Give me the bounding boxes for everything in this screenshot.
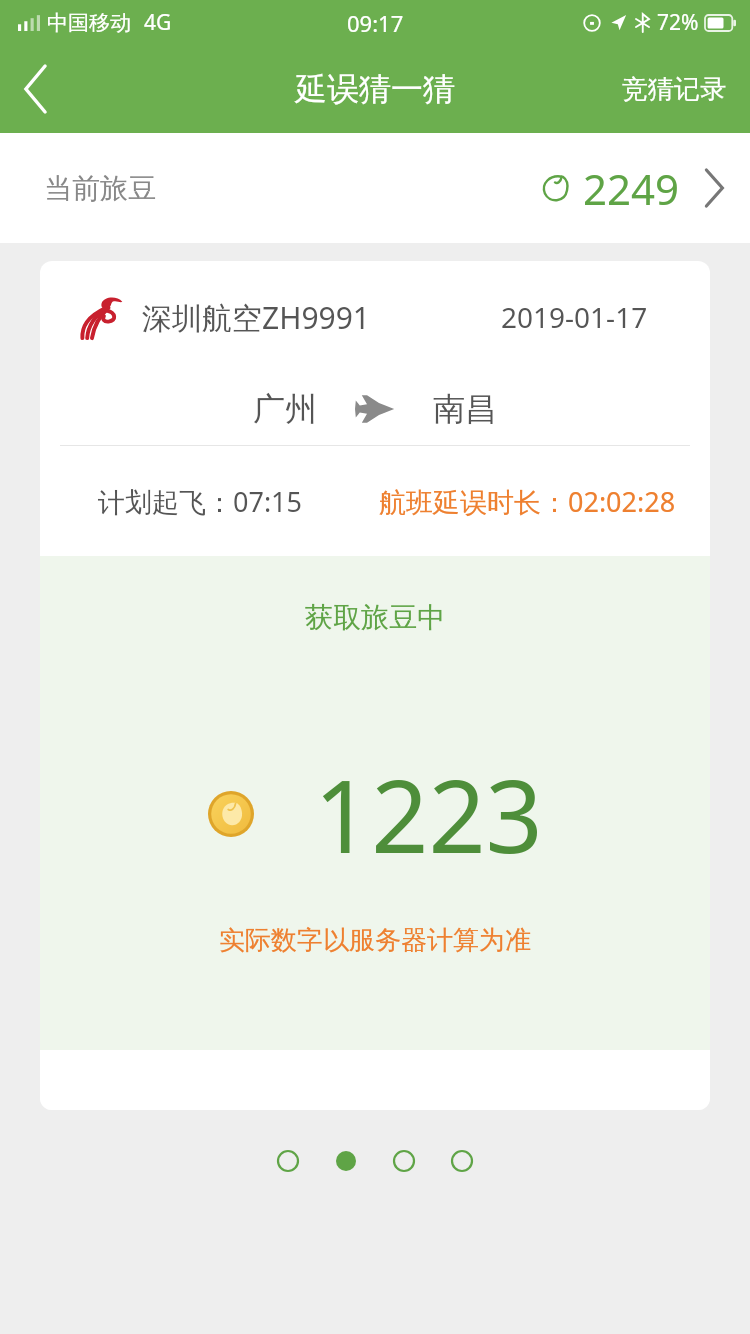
staticText: 2249: [583, 160, 680, 217]
staticText: 72%: [657, 8, 699, 37]
staticText: 获取旅豆中: [305, 600, 445, 635]
staticText: 4G: [144, 8, 172, 37]
button[interactable]: Page 4: [433, 1132, 491, 1190]
staticText: 竞猜记录: [622, 73, 726, 106]
staticText: 1223: [314, 746, 543, 882]
button[interactable]: 当前旅豆: [0, 133, 750, 243]
staticText: 延误猜一猜: [295, 69, 455, 109]
staticText: 09:17: [347, 8, 404, 38]
staticText: 中国移动: [47, 10, 131, 36]
staticText: 深圳航空ZH9991: [142, 297, 371, 338]
button[interactable]: Page 3: [375, 1132, 433, 1190]
staticText: 实际数字以服务器计算为准: [219, 924, 531, 957]
staticText: 航班延误时长：02:02:28: [379, 483, 676, 520]
staticText: 广州: [253, 389, 317, 429]
button[interactable]: Page 2: [317, 1132, 375, 1190]
staticText: 南昌: [433, 389, 497, 429]
staticText: 当前旅豆: [44, 171, 156, 206]
button[interactable]: Back: [0, 54, 70, 124]
staticText: 计划起飞：07:15: [98, 483, 303, 520]
button[interactable]: Page 1: [259, 1132, 317, 1190]
staticText: 2019-01-17: [501, 298, 648, 336]
button[interactable]: 竞猜记录: [598, 45, 750, 133]
